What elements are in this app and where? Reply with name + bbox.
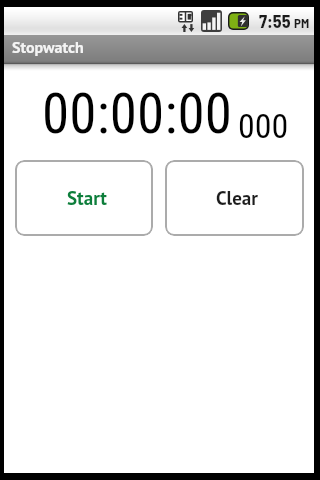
staticText: 7:55 bbox=[259, 10, 291, 32]
staticText: 000 bbox=[238, 106, 289, 146]
staticText: PM bbox=[294, 15, 310, 31]
staticText: Start bbox=[67, 186, 107, 211]
staticText: Clear bbox=[216, 186, 258, 211]
button[interactable]: Start bbox=[15, 160, 153, 236]
button[interactable]: Clear bbox=[165, 160, 304, 236]
staticText: 00:00:00 bbox=[42, 82, 233, 146]
staticText: Stopwatch bbox=[12, 37, 84, 58]
